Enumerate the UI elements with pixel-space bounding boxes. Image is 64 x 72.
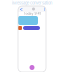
staticText: Today 9:41 xyxy=(23,11,40,15)
staticText: < xyxy=(19,6,23,12)
staticText: iMessage conversation xyxy=(12,1,52,5)
